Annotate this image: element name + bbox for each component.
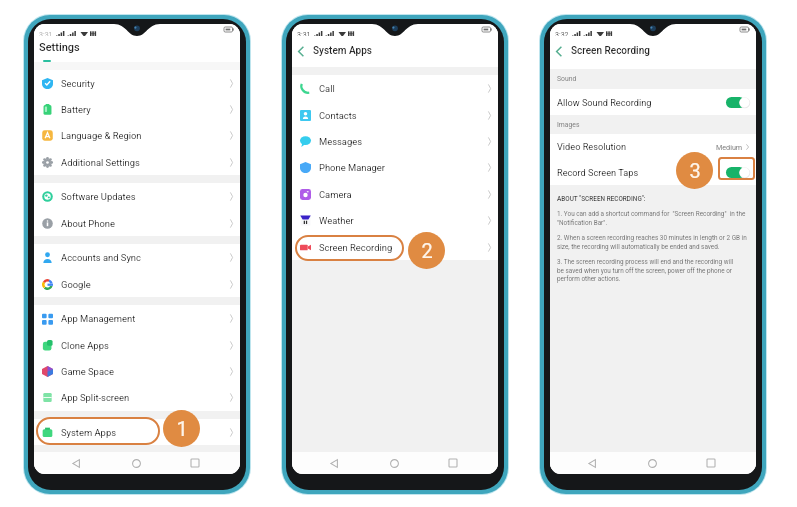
button[interactable]: Recents (441, 454, 465, 472)
button[interactable]: Back (580, 454, 604, 472)
staticText: ABOUT "SCREEN RECORDING": (557, 195, 646, 203)
staticText: 2 (421, 239, 433, 262)
staticText: App Split-screen (61, 392, 130, 403)
staticText: App Management (61, 313, 136, 324)
button[interactable]: Phone Manager (292, 154, 498, 181)
button[interactable]: Home (640, 454, 664, 472)
button[interactable]: Back (64, 454, 88, 472)
staticText: 3:32 (555, 31, 569, 39)
button[interactable]: Call (292, 75, 498, 102)
staticText: Allow Sound Recording (557, 97, 652, 108)
button[interactable]: Back (322, 454, 346, 472)
staticText: 1 (176, 417, 188, 440)
button[interactable]: Security (34, 70, 240, 96)
button[interactable]: Google (34, 271, 240, 297)
staticText: Call (319, 83, 335, 94)
button[interactable]: Back (550, 42, 568, 60)
staticText: Contacts (319, 110, 357, 121)
button[interactable]: Additional Settings (34, 149, 240, 175)
staticText: 1. You can add a shortcut command for "S… (557, 210, 746, 226)
staticText: Battery (61, 104, 91, 115)
staticText: 3:31 (39, 31, 53, 39)
staticText: Settings (39, 41, 80, 54)
button[interactable]: Software Updates (34, 183, 240, 210)
staticText: Medium (716, 143, 743, 151)
button[interactable]: Battery (34, 96, 240, 122)
button[interactable]: App Management (34, 305, 240, 332)
staticText: Camera (319, 189, 352, 200)
staticText: Messages (319, 136, 363, 147)
button[interactable]: Camera (292, 181, 498, 207)
button[interactable]: Recents (183, 454, 207, 472)
button[interactable]: 1 (163, 410, 200, 447)
staticText: Images (557, 121, 580, 129)
button[interactable]: Record Screen Taps (550, 159, 756, 185)
button[interactable] (36, 417, 160, 445)
button[interactable]: Messages (292, 128, 498, 154)
staticText: Sound (557, 75, 577, 83)
button[interactable]: Allow Sound Recording (550, 89, 756, 115)
staticText: Weather (319, 215, 354, 226)
button[interactable] (718, 157, 755, 180)
staticText: Security (61, 78, 95, 89)
staticText: Google (61, 279, 91, 290)
button[interactable]: App Split-screen (34, 384, 240, 411)
staticText: System Apps (61, 427, 117, 438)
button[interactable]: Screen Recording (292, 234, 498, 260)
button[interactable]: Contacts (292, 102, 498, 128)
staticText: 3. The screen recording process will end… (557, 258, 734, 282)
staticText: 2. When a screen recording reaches 30 mi… (557, 234, 747, 250)
button[interactable]: Accounts and Sync (34, 244, 240, 271)
button[interactable]: System Apps (34, 419, 240, 445)
button[interactable]: Home (124, 454, 148, 472)
button[interactable]: Clone Apps (34, 332, 240, 358)
button[interactable]: Home (382, 454, 406, 472)
button[interactable]: Back (292, 42, 310, 60)
staticText: Additional Settings (61, 157, 140, 168)
staticText: Record Screen Taps (557, 167, 639, 178)
staticText: Software Updates (61, 191, 136, 202)
staticText: Clone Apps (61, 340, 109, 351)
staticText: Language & Region (61, 130, 142, 141)
staticText: About Phone (61, 218, 115, 229)
button[interactable]: 3 (676, 152, 713, 189)
button[interactable]: About Phone (34, 210, 240, 236)
staticText: Accounts and Sync (61, 252, 141, 263)
staticText: Screen Recording (319, 242, 393, 253)
button[interactable] (295, 235, 404, 261)
staticText: Screen Recording (571, 45, 650, 57)
staticText: 3:31 (297, 31, 311, 39)
staticText: Phone Manager (319, 162, 385, 173)
button[interactable]: Language & Region (34, 122, 240, 149)
staticText: Video Resolution (557, 141, 627, 152)
button[interactable]: Video Resolution (550, 134, 756, 159)
button[interactable]: Game Space (34, 358, 240, 384)
button[interactable]: Weather (292, 207, 498, 234)
staticText: 3 (689, 159, 701, 182)
staticText: Game Space (61, 366, 114, 377)
button[interactable]: Recents (699, 454, 723, 472)
staticText: System Apps (313, 45, 372, 57)
button[interactable]: 2 (408, 232, 445, 269)
